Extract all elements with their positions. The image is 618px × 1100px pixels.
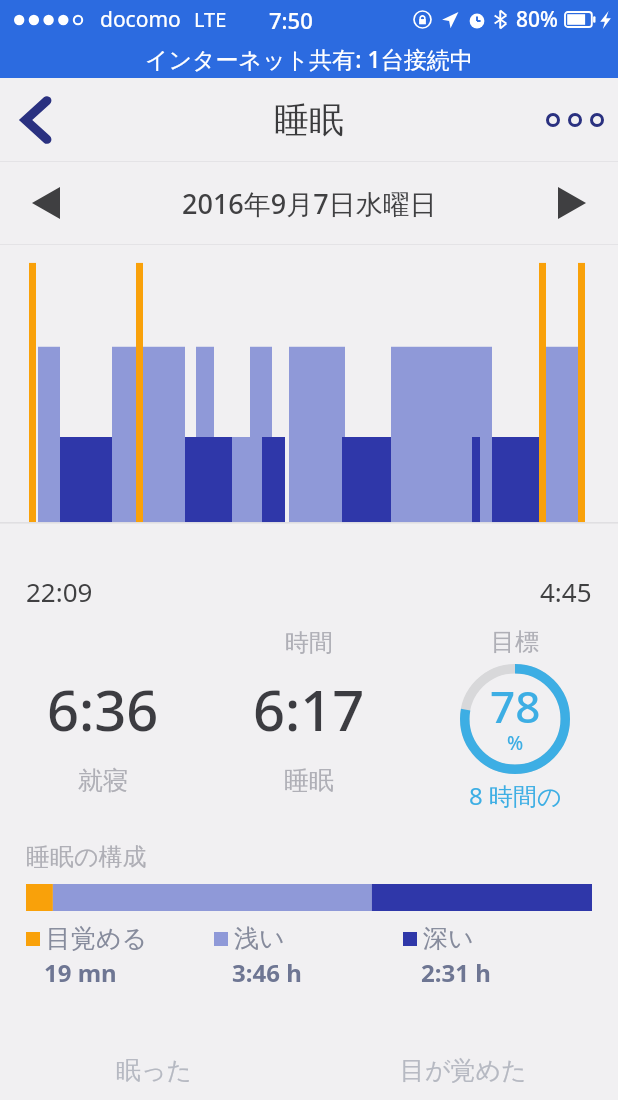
staticText: 睡眠 (284, 765, 334, 796)
staticText: 4:45 (540, 574, 592, 609)
staticText: 8 時間の (469, 779, 562, 812)
button[interactable]: Back (0, 84, 72, 156)
staticText: 7:50 (269, 5, 313, 35)
staticText: 目覚める (46, 923, 148, 954)
button[interactable]: 時間 (206, 627, 412, 796)
button[interactable]: 6:36 (0, 627, 206, 796)
staticText: インターネット共有: 1台接続中 (145, 43, 473, 74)
staticText: 3:46 h (232, 956, 302, 989)
staticText: 6:36 (47, 671, 159, 747)
staticText: 目標 (491, 627, 539, 657)
staticText: 就寝 (78, 765, 128, 796)
button[interactable]: Next day (526, 167, 618, 239)
button[interactable]: 目が覚めた (400, 1055, 527, 1086)
staticText: 深い (423, 923, 474, 954)
button[interactable]: 浅い (214, 923, 403, 989)
staticText: 睡眠 (274, 98, 344, 142)
staticText: 6:17 (253, 671, 365, 747)
staticText: 2:31 h (421, 956, 491, 989)
staticText: 78 (490, 676, 541, 736)
button[interactable]: Previous day (0, 167, 92, 239)
staticText: LTE (194, 6, 227, 33)
button[interactable]: 深い (403, 923, 592, 989)
staticText: 19 mn (44, 956, 117, 989)
button[interactable]: 目覚める (26, 923, 214, 989)
button[interactable]: 目標 (459, 627, 571, 812)
button[interactable]: 眠った (116, 1055, 193, 1086)
staticText: docomo (100, 5, 181, 34)
staticText: 80% (516, 5, 558, 34)
button[interactable]: More options (532, 84, 618, 156)
staticText: 睡眠の構成 (26, 842, 147, 872)
staticText: 浅い (234, 923, 285, 954)
staticText: 時間 (285, 628, 333, 658)
staticText: % (507, 730, 524, 756)
staticText: 2016年9月7日水曜日 (182, 185, 437, 222)
staticText: 22:09 (26, 574, 93, 609)
